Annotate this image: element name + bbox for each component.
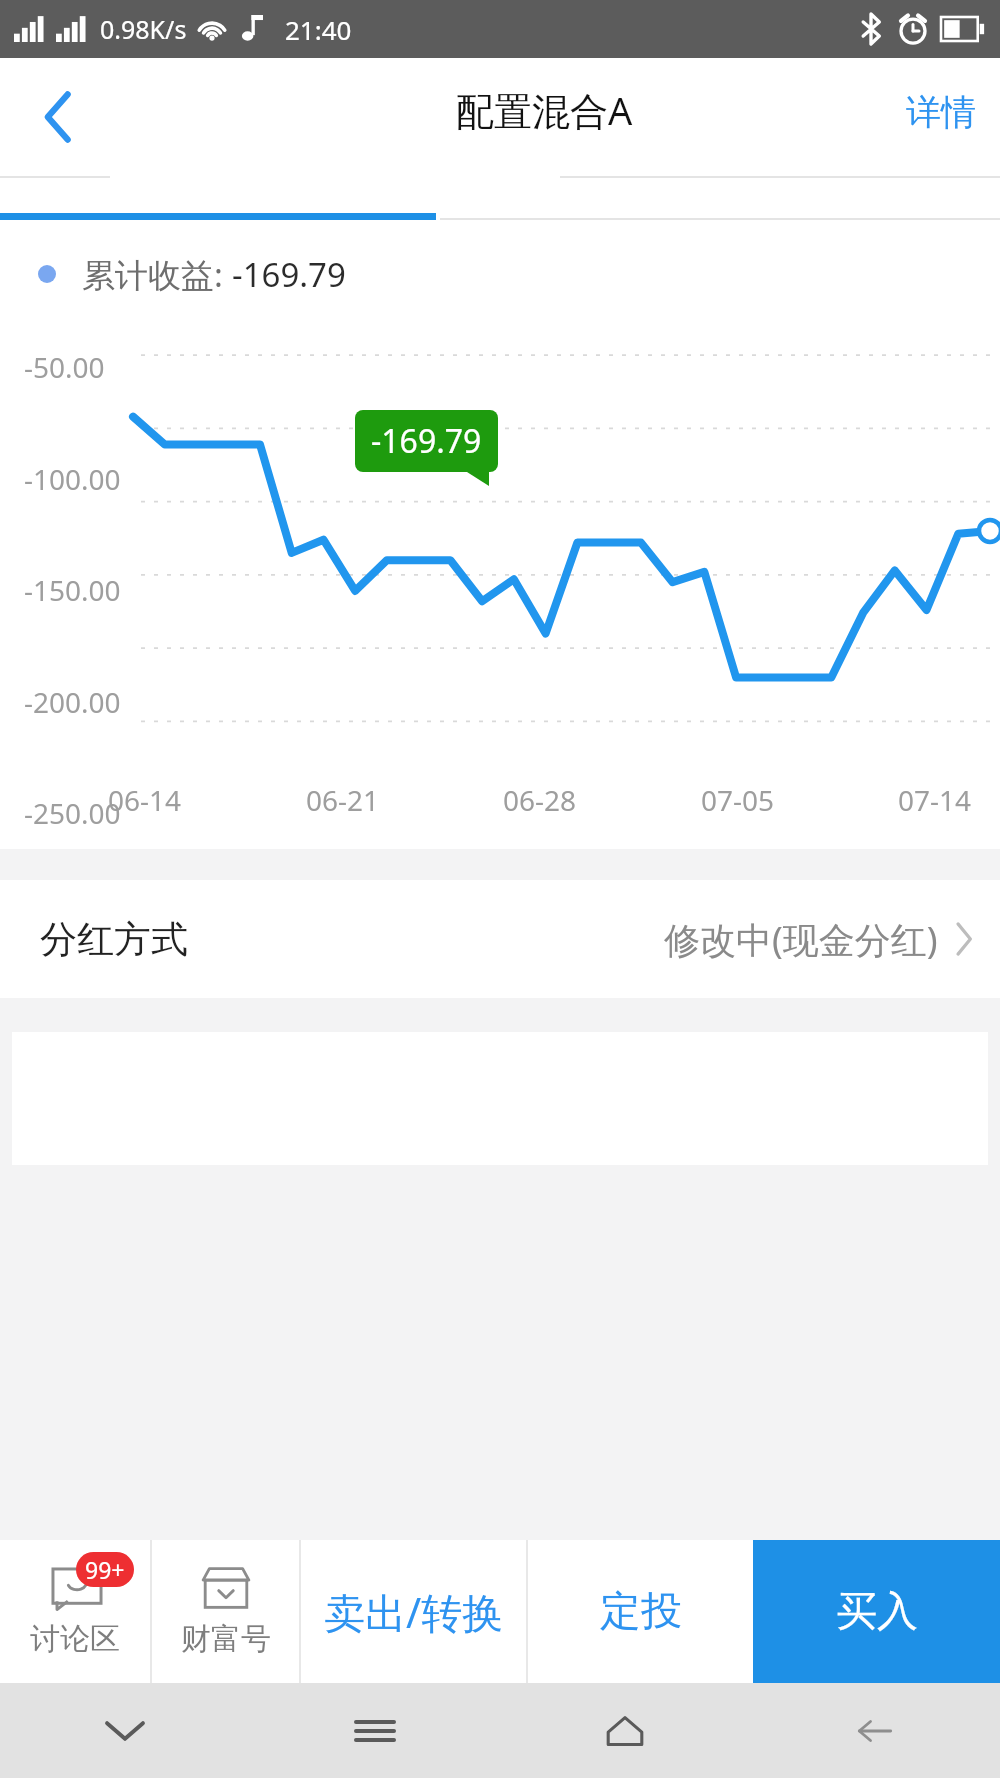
staticText: 财富号 — [181, 1620, 271, 1658]
staticText: -200.00 — [24, 683, 121, 721]
button[interactable]: 分红方式 — [0, 880, 1000, 998]
staticText: 详情 — [906, 90, 976, 134]
staticText: -50.00 — [24, 348, 105, 386]
staticText: -169.79 — [232, 252, 346, 297]
staticText: 分红方式 — [40, 916, 188, 963]
staticText: -150.00 — [24, 571, 121, 609]
button[interactable]: 买入 — [753, 1540, 1000, 1683]
staticText: -169.79 — [371, 419, 482, 463]
staticText: -250.00 — [24, 794, 121, 832]
staticText: 0.98K/s — [100, 12, 187, 46]
button[interactable]: Home — [500, 1683, 750, 1778]
staticText: 卖出/转换 — [324, 1584, 504, 1640]
staticText: 定投 — [600, 1586, 682, 1638]
button[interactable]: Back — [20, 79, 96, 155]
staticText: 讨论区 — [30, 1620, 120, 1658]
button[interactable]: 详情 — [896, 78, 986, 146]
staticText: -100.00 — [24, 460, 121, 498]
staticText: 07-05 — [701, 781, 775, 819]
staticText: 21:40 — [285, 12, 352, 47]
staticText: 07-14 — [898, 781, 972, 819]
staticText: 修改中(现金分红) — [664, 915, 938, 964]
staticText: 06-21 — [306, 781, 380, 819]
button[interactable]: 卖出/转换 — [301, 1540, 526, 1683]
staticText: -300.00 — [24, 906, 121, 944]
button[interactable]: 99+ — [0, 1540, 150, 1683]
button[interactable]: 财富号 — [152, 1540, 299, 1683]
button[interactable]: Menu — [250, 1683, 500, 1778]
staticText: 99+ — [85, 1554, 125, 1585]
button[interactable]: Collapse — [0, 1683, 250, 1778]
staticText: 配置混合A — [456, 84, 633, 136]
staticText: 06-28 — [503, 781, 577, 819]
staticText: 买入 — [836, 1586, 918, 1638]
staticText: 06-14 — [108, 781, 182, 819]
button[interactable]: Back — [750, 1683, 1000, 1778]
staticText: 累计收益: — [82, 252, 232, 297]
button[interactable]: 定投 — [528, 1540, 753, 1683]
